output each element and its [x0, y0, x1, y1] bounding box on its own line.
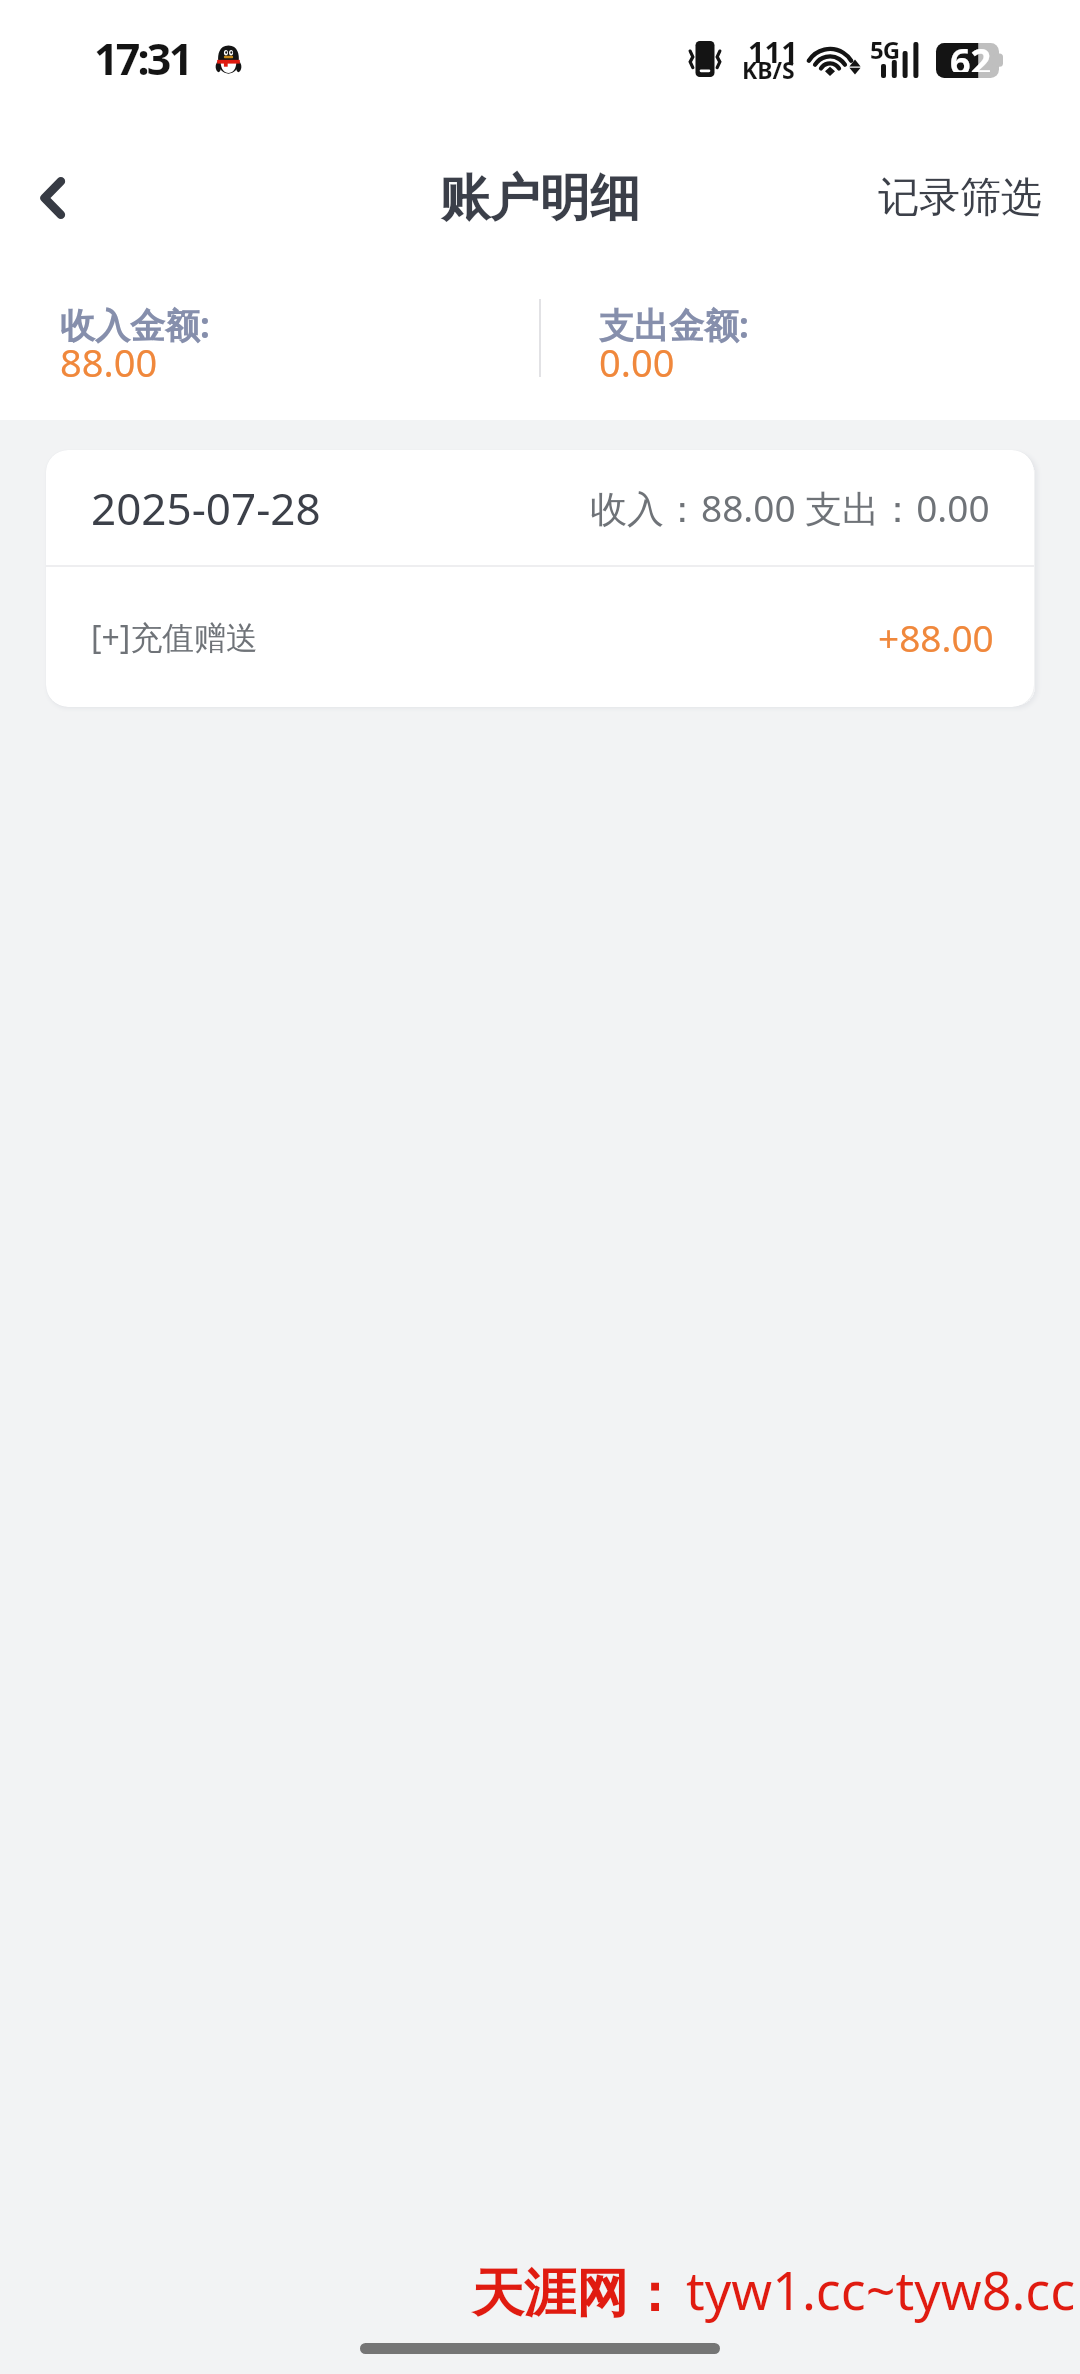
staticText: +88.00	[878, 612, 994, 662]
staticText: KB/S	[742, 54, 795, 85]
staticText: tyw1.cc~tyw8.cc	[686, 2254, 1076, 2325]
button[interactable]: 记录筛选	[840, 144, 1080, 252]
staticText: 支出金额:	[599, 301, 749, 349]
staticText: 0.00	[599, 336, 675, 388]
staticText: 收入金额:	[60, 301, 210, 349]
staticText: 17:31	[94, 29, 191, 88]
staticText: 111	[748, 32, 798, 71]
staticText: 记录筛选	[878, 172, 1042, 224]
staticText: 天涯网：	[472, 2261, 680, 2327]
button[interactable]: Back	[4, 150, 100, 246]
staticText: 收入：88.00 支出：0.00	[590, 482, 990, 533]
button[interactable]: 2025-07-28	[46, 450, 1034, 565]
staticText: 账户明细	[440, 167, 640, 230]
staticText: 88.00	[60, 336, 158, 388]
button[interactable]: [+]充值赠送	[46, 567, 1034, 707]
staticText: 5G	[870, 33, 900, 66]
staticText: 2025-07-28	[91, 478, 321, 538]
staticText: [+]充值赠送	[91, 615, 259, 659]
staticText: 62	[950, 37, 992, 72]
